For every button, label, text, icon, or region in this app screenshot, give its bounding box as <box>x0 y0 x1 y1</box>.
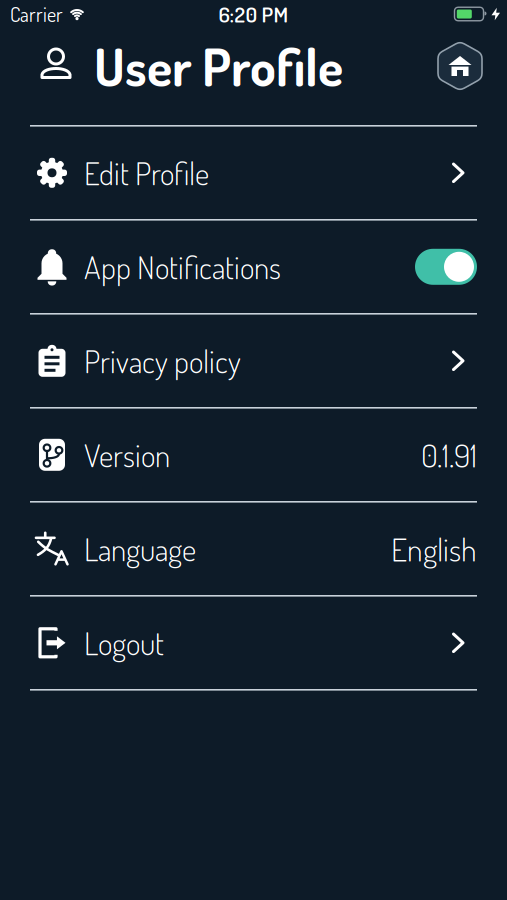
staticText: 0.1.91 <box>421 435 477 475</box>
staticText: Carrier <box>10 1 63 27</box>
button[interactable]: Language <box>0 503 507 595</box>
button[interactable]: Version <box>0 409 507 501</box>
staticText: Logout <box>84 623 164 663</box>
button[interactable] <box>438 41 482 90</box>
staticText: App Notifications <box>84 247 281 287</box>
staticText: User Profile <box>94 33 343 99</box>
staticText: 6:20 PM <box>218 0 288 27</box>
button[interactable]: Edit Profile <box>0 127 507 219</box>
staticText: Version <box>84 435 170 475</box>
button[interactable]: Privacy policy <box>0 315 507 407</box>
button[interactable] <box>415 249 477 285</box>
button[interactable]: Logout <box>0 597 507 689</box>
staticText: Edit Profile <box>84 153 209 193</box>
staticText: Language <box>84 529 196 569</box>
staticText: Privacy policy <box>84 341 241 381</box>
button[interactable]: App Notifications <box>0 221 507 313</box>
staticText: English <box>391 529 477 569</box>
